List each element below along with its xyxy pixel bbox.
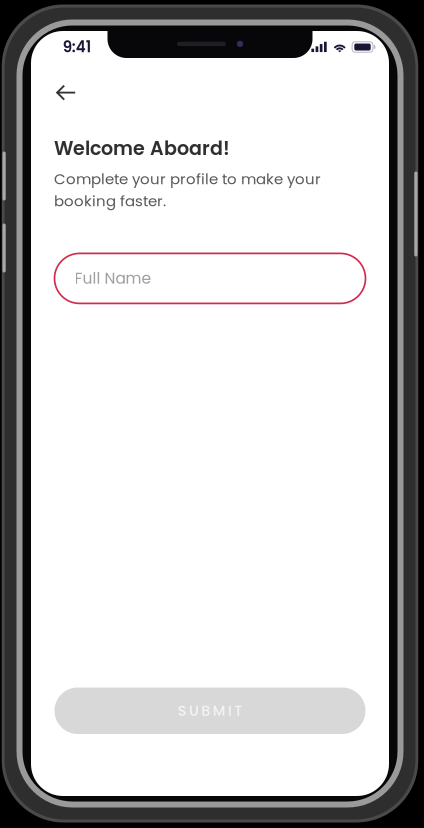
staticText: Complete your profile to make your (54, 169, 321, 189)
staticText: 9:41 (63, 36, 91, 57)
button[interactable]: Full Name (54, 253, 365, 303)
staticText: SUBMIT (178, 701, 242, 721)
staticText: Welcome Aboard! (54, 135, 230, 162)
button[interactable]: SUBMIT (54, 687, 365, 734)
staticText: Full Name (74, 268, 151, 289)
staticText: booking faster. (54, 190, 166, 211)
button[interactable]: Back (31, 71, 96, 117)
